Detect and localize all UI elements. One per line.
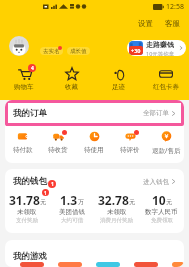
button[interactable]	[172, 262, 184, 267]
button[interactable]: Profile avatar	[9, 36, 29, 56]
button[interactable]: 待付款	[5, 126, 40, 154]
button[interactable]: 签到	[20, 262, 44, 267]
staticText: 待付款	[13, 146, 33, 154]
button[interactable]: 收藏	[48, 59, 95, 91]
staticText: 足迹	[112, 83, 125, 91]
staticText: 4	[31, 65, 34, 72]
staticText: 购物车	[14, 83, 34, 91]
staticText: 支付奖励	[16, 217, 38, 224]
button[interactable]: 待使用	[76, 126, 112, 154]
staticText: 大约可借	[61, 217, 83, 224]
button[interactable]: 30元	[134, 262, 158, 267]
button[interactable]: 31.78	[5, 194, 49, 226]
staticText: 万	[78, 198, 84, 206]
staticText: 退款/售后	[152, 146, 181, 155]
staticText: 我的钱包	[13, 176, 47, 187]
button[interactable]: +30	[127, 40, 186, 56]
button[interactable]: 4	[0, 59, 48, 91]
staticText: 31.78	[9, 192, 40, 208]
staticText: 数字人民币	[145, 208, 178, 216]
button[interactable]: 我的订单	[5, 100, 184, 126]
button[interactable]	[96, 262, 120, 267]
button[interactable]: 去实名	[40, 47, 63, 55]
staticText: 未领取	[17, 208, 37, 216]
staticText: 32.78	[98, 192, 129, 208]
button[interactable]: 我的钱包	[5, 169, 184, 194]
staticText: 我的游戏	[13, 251, 47, 262]
staticText: 待收货	[48, 146, 68, 154]
staticText: 美团借钱	[59, 208, 85, 216]
staticText: 去实名	[43, 48, 60, 55]
staticText: 元	[40, 198, 46, 206]
button[interactable]: 待评价	[112, 126, 148, 154]
button[interactable]: 足迹	[95, 59, 142, 91]
staticText: 走路赚钱	[146, 40, 174, 49]
staticText: 10元等你拿	[146, 50, 175, 56]
staticText: 收藏	[65, 83, 78, 91]
staticText: 1.3	[60, 192, 78, 208]
button[interactable]: 客服	[162, 17, 183, 30]
button[interactable]: 1.3	[49, 194, 94, 226]
staticText: 全部订单	[143, 109, 169, 117]
staticText: 元	[129, 198, 135, 206]
button[interactable]: 待收货	[40, 126, 76, 154]
staticText: 成长值	[70, 48, 87, 55]
staticText: 未领取	[107, 208, 127, 216]
staticText: +30	[131, 47, 141, 54]
button[interactable]: 设置	[135, 17, 156, 30]
button[interactable]: 成长值	[67, 47, 90, 55]
staticText: 元	[166, 198, 172, 206]
staticText: 10	[152, 192, 166, 208]
staticText: 进入钱包	[143, 178, 169, 186]
button[interactable]: 10	[139, 194, 184, 226]
staticText: 客服	[165, 19, 180, 28]
staticText: 免费领取	[151, 217, 173, 224]
button[interactable]: 退款/售后	[148, 126, 184, 155]
button[interactable]: 32.78	[94, 194, 139, 226]
staticText: 红包卡券	[153, 83, 179, 91]
staticText: 消费月付奖励	[100, 217, 133, 224]
staticText: 1	[44, 190, 47, 196]
staticText: 待评价	[120, 146, 140, 154]
button[interactable]: 红包卡券	[142, 59, 189, 91]
staticText: 待使用	[84, 146, 104, 154]
button[interactable]: 可领取	[58, 262, 82, 267]
staticText: 我的订单	[13, 108, 47, 119]
staticText: 1	[51, 181, 54, 188]
staticText: 设置	[138, 19, 153, 28]
staticText: 12:58	[166, 2, 184, 12]
